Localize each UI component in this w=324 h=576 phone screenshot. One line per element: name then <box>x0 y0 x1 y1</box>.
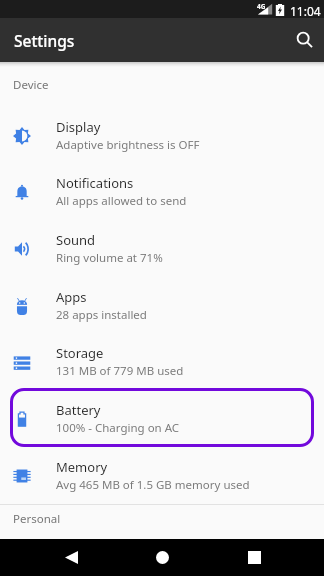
staticText: Battery <box>56 401 101 419</box>
button[interactable]: Memory <box>0 447 324 504</box>
button[interactable]: Battery <box>0 390 324 447</box>
staticText: Memory <box>56 458 108 476</box>
staticText: Sound <box>56 231 96 249</box>
staticText: 131 MB of 779 MB used <box>56 363 184 379</box>
staticText: All apps allowed to send <box>56 193 187 209</box>
staticText: 4G <box>257 2 266 11</box>
staticText: 11:04 <box>290 3 321 19</box>
staticText: Notifications <box>56 174 134 192</box>
staticText: Display <box>56 118 101 136</box>
staticText: Adaptive brightness is OFF <box>56 137 200 153</box>
staticText: Storage <box>56 344 104 362</box>
button[interactable]: Apps <box>0 277 324 334</box>
button[interactable]: Home <box>152 539 172 576</box>
button[interactable]: Search <box>287 22 323 58</box>
staticText: Personal <box>13 511 61 527</box>
button[interactable]: Notifications <box>0 163 324 220</box>
staticText: Ring volume at 71% <box>56 250 163 266</box>
staticText: 100% - Charging on AC <box>56 420 180 436</box>
button[interactable]: Display <box>0 107 324 164</box>
button[interactable]: Sound <box>0 220 324 277</box>
staticText: Settings <box>14 30 75 51</box>
button[interactable]: Recents <box>244 539 264 576</box>
button[interactable]: Back <box>61 539 81 576</box>
staticText: Avg 465 MB of 1.5 GB memory used <box>56 477 250 493</box>
staticText: Device <box>13 77 49 93</box>
button[interactable]: Storage <box>0 333 324 390</box>
staticText: Apps <box>56 288 87 306</box>
staticText: 28 apps installed <box>56 307 147 323</box>
